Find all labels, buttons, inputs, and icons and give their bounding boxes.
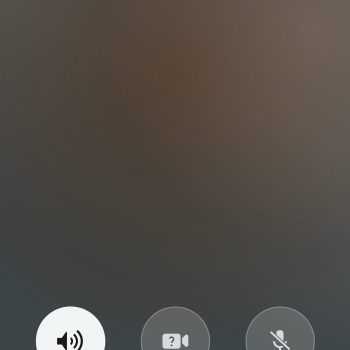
button[interactable]: Unmute (245, 306, 315, 350)
button[interactable]: Switch to FaceTime video (141, 306, 210, 350)
button[interactable]: Speaker (36, 306, 105, 350)
